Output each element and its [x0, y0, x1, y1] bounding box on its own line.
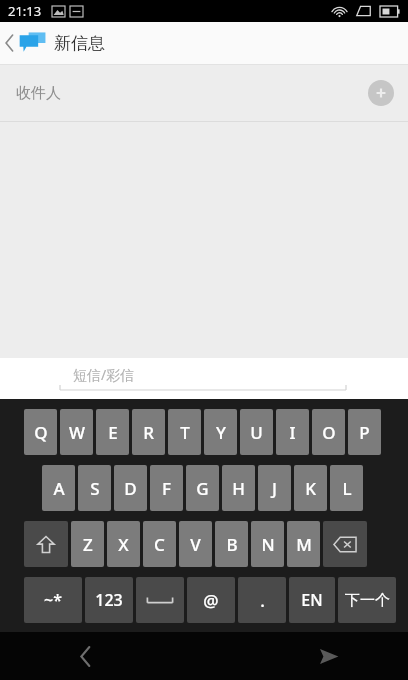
- button[interactable]: Back: [0, 22, 18, 64]
- staticText: D: [124, 477, 137, 500]
- button[interactable]: 短信/彩信: [73, 365, 135, 384]
- staticText: 新信息: [54, 33, 105, 54]
- button[interactable]: L: [330, 465, 363, 511]
- staticText: R: [143, 421, 154, 444]
- button[interactable]: 123: [85, 577, 133, 623]
- button[interactable]: V: [179, 521, 212, 567]
- button[interactable]: Add recipient: [368, 80, 394, 106]
- staticText: 123: [95, 589, 123, 611]
- button[interactable]: Q: [24, 409, 57, 455]
- button[interactable]: K: [294, 465, 327, 511]
- button[interactable]: .: [238, 577, 286, 623]
- button[interactable]: C: [143, 521, 176, 567]
- button[interactable]: D: [114, 465, 147, 511]
- button[interactable]: N: [251, 521, 284, 567]
- staticText: X: [118, 533, 129, 556]
- button[interactable]: R: [132, 409, 165, 455]
- staticText: @: [203, 589, 219, 612]
- staticText: M: [296, 533, 312, 556]
- button[interactable]: @: [187, 577, 235, 623]
- button[interactable]: F: [150, 465, 183, 511]
- staticText: F: [162, 477, 171, 500]
- staticText: 21:13: [8, 2, 42, 20]
- staticText: G: [196, 477, 209, 500]
- staticText: C: [154, 533, 165, 556]
- button[interactable]: Y: [204, 409, 237, 455]
- staticText: ~*: [44, 589, 62, 611]
- button[interactable]: Send: [306, 633, 352, 679]
- button[interactable]: Shift: [24, 521, 68, 567]
- button[interactable]: H: [222, 465, 255, 511]
- button[interactable]: J: [258, 465, 291, 511]
- button[interactable]: Space: [136, 577, 184, 623]
- staticText: J: [272, 477, 277, 500]
- button[interactable]: A: [42, 465, 75, 511]
- button[interactable]: ~*: [24, 577, 82, 623]
- button[interactable]: T: [168, 409, 201, 455]
- button[interactable]: Z: [71, 521, 104, 567]
- button[interactable]: O: [312, 409, 345, 455]
- staticText: I: [289, 421, 296, 444]
- staticText: 收件人: [16, 84, 61, 103]
- staticText: N: [261, 533, 275, 556]
- staticText: Z: [83, 533, 93, 556]
- button[interactable]: X: [107, 521, 140, 567]
- staticText: V: [190, 533, 201, 556]
- staticText: L: [342, 477, 352, 500]
- button[interactable]: 收件人: [0, 65, 408, 121]
- staticText: S: [90, 477, 100, 500]
- button[interactable]: B: [215, 521, 248, 567]
- staticText: O: [322, 421, 336, 444]
- staticText: W: [69, 421, 85, 444]
- button[interactable]: EN: [289, 577, 335, 623]
- staticText: E: [108, 421, 118, 444]
- button[interactable]: I: [276, 409, 309, 455]
- staticText: EN: [301, 589, 323, 611]
- button[interactable]: Backspace: [323, 521, 367, 567]
- staticText: B: [226, 533, 238, 556]
- button[interactable]: M: [287, 521, 320, 567]
- staticText: .: [260, 589, 265, 612]
- button[interactable]: 下一个: [338, 577, 396, 623]
- staticText: T: [180, 421, 190, 444]
- staticText: U: [250, 421, 263, 444]
- button[interactable]: P: [348, 409, 381, 455]
- staticText: A: [53, 477, 65, 500]
- button[interactable]: Back: [62, 633, 108, 679]
- staticText: P: [359, 421, 370, 444]
- button[interactable]: G: [186, 465, 219, 511]
- staticText: Q: [34, 421, 48, 444]
- button[interactable]: E: [96, 409, 129, 455]
- button[interactable]: S: [78, 465, 111, 511]
- button[interactable]: W: [60, 409, 93, 455]
- staticText: 下一个: [345, 591, 390, 610]
- button[interactable]: U: [240, 409, 273, 455]
- staticText: Y: [216, 421, 226, 444]
- staticText: H: [232, 477, 245, 500]
- button[interactable]: Back: [0, 22, 408, 64]
- staticText: K: [305, 477, 316, 500]
